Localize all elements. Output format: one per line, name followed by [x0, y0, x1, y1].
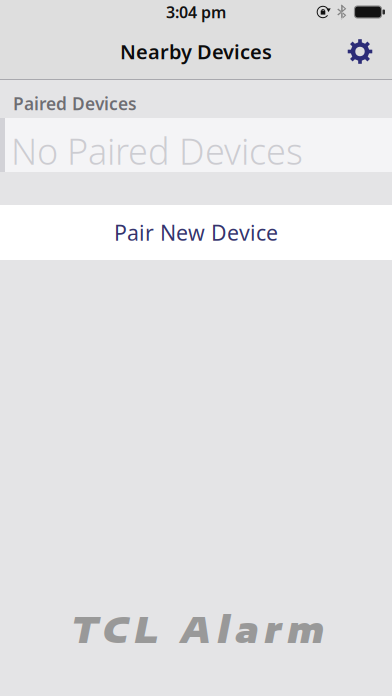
staticText: 3:04 pm [166, 1, 226, 23]
button[interactable]: Pair New Device [0, 205, 392, 260]
staticText: TCL Alarm [69, 607, 322, 651]
staticText: Pair New Device [114, 218, 278, 247]
staticText: Paired Devices [13, 92, 137, 115]
staticText: No Paired Devices [11, 127, 303, 175]
staticText: Nearby Devices [120, 38, 272, 65]
button[interactable]: Settings [338, 29, 382, 73]
